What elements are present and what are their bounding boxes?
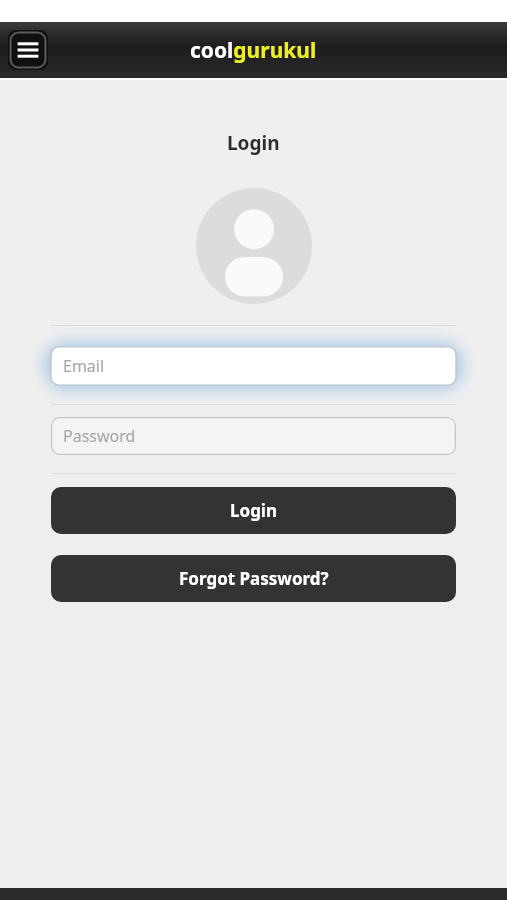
button[interactable]: Password [51, 417, 456, 455]
staticText: Login [227, 130, 280, 156]
staticText: Email [63, 355, 105, 377]
staticText: coolgurukul [190, 36, 317, 65]
button[interactable]: Forgot Password? [51, 555, 456, 602]
staticText: Password [63, 425, 136, 447]
button[interactable]: Open navigation menu [8, 30, 48, 70]
button[interactable]: Email [51, 347, 456, 385]
staticText: Forgot Password? [179, 567, 329, 590]
button[interactable]: Login [51, 487, 456, 534]
staticText: Login [230, 499, 278, 522]
